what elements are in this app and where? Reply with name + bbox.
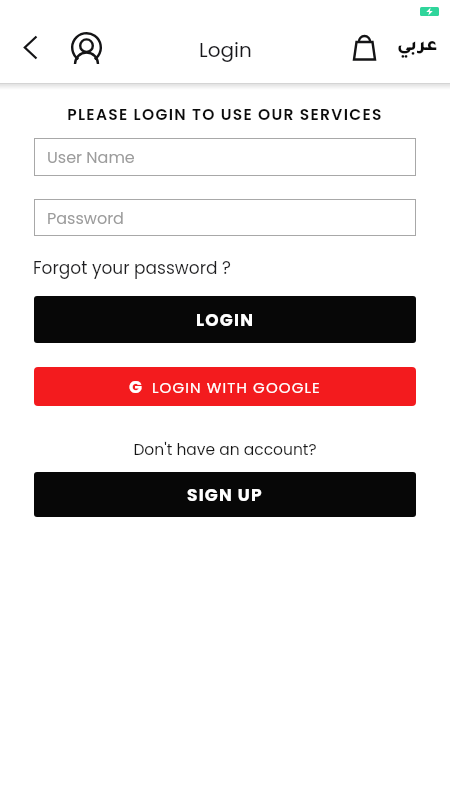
staticText: LOGIN WITH GOOGLE xyxy=(152,377,321,398)
staticText: User Name xyxy=(47,146,135,168)
button[interactable] xyxy=(71,32,102,63)
button[interactable]: عربي xyxy=(397,38,438,57)
button[interactable]: Forgot your password ? xyxy=(33,256,231,280)
staticText: SIGN UP xyxy=(187,483,263,507)
staticText: LOGIN xyxy=(196,308,255,332)
button[interactable] xyxy=(352,34,377,61)
button[interactable]: SIGN UP xyxy=(34,472,416,517)
button[interactable] xyxy=(24,36,37,59)
button[interactable]: User Name xyxy=(34,138,416,176)
staticText: Password xyxy=(47,207,124,229)
staticText: PLEASE LOGIN TO USE OUR SERVICES xyxy=(0,104,450,126)
staticText: Login xyxy=(199,36,252,64)
button[interactable]: G xyxy=(34,367,416,406)
staticText: Don't have an account? xyxy=(0,439,450,461)
button[interactable]: Password xyxy=(34,199,416,236)
staticText: G xyxy=(129,375,142,399)
button[interactable]: LOGIN xyxy=(34,296,416,343)
